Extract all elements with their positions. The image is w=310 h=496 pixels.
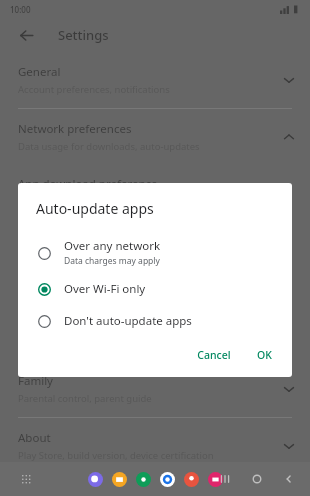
staticText: 10:00 xyxy=(10,4,31,15)
button[interactable]: Back xyxy=(280,470,298,488)
staticText: Auto-update apps xyxy=(18,230,115,246)
button[interactable]: App xyxy=(136,472,151,487)
staticText: Network preferences xyxy=(18,121,132,137)
staticText: Auto-update apps over Wi-Fi only xyxy=(18,249,166,262)
button[interactable]: Over any network xyxy=(18,232,292,273)
button[interactable]: Don't auto-update apps xyxy=(18,305,292,337)
button[interactable]: Auto-update apps xyxy=(0,219,310,273)
staticText: Over any network xyxy=(18,195,98,208)
staticText: Data charges may apply xyxy=(64,255,160,267)
button[interactable]: App xyxy=(184,472,199,487)
staticText: App download preference xyxy=(18,176,158,192)
staticText: Settings xyxy=(58,26,109,44)
staticText: Family xyxy=(18,373,53,389)
staticText: Account preferences, notifications xyxy=(18,83,170,96)
staticText: Parental control, parent guide xyxy=(18,392,152,405)
staticText: OK xyxy=(257,348,272,362)
button[interactable]: Family xyxy=(0,361,310,417)
button[interactable]: App xyxy=(112,472,127,487)
button[interactable]: Home xyxy=(248,470,266,488)
button[interactable]: App xyxy=(160,472,175,487)
button[interactable]: Network preferences xyxy=(0,109,310,165)
staticText: About xyxy=(18,430,51,446)
button[interactable]: Back xyxy=(12,21,40,49)
button[interactable]: App xyxy=(88,472,103,487)
button[interactable]: All apps xyxy=(16,469,36,489)
staticText: General xyxy=(18,64,61,80)
button[interactable]: Over Wi-Fi only xyxy=(18,273,292,305)
staticText: Play Store, build version, device certif… xyxy=(18,449,214,462)
staticText: Auto-update apps xyxy=(36,199,154,218)
button[interactable]: OK xyxy=(249,343,280,367)
staticText: Over any network xyxy=(64,238,161,254)
button[interactable]: About xyxy=(0,418,310,474)
button[interactable]: App download preference xyxy=(0,165,310,219)
button[interactable]: Recents xyxy=(216,470,234,488)
button[interactable]: App xyxy=(208,472,223,487)
staticText: Cancel xyxy=(197,348,231,362)
staticText: Over Wi-Fi only xyxy=(64,281,146,297)
staticText: Don't auto-update apps xyxy=(64,313,192,329)
button[interactable]: Cancel xyxy=(189,343,239,367)
staticText: Data usage for downloads, auto-updates xyxy=(18,140,200,153)
